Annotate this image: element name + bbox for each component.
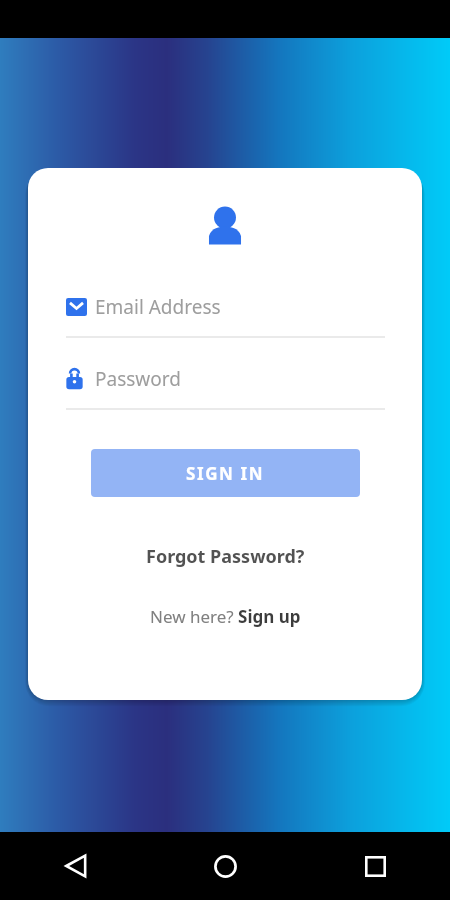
button[interactable]: New here? Sign up — [140, 601, 311, 632]
button[interactable]: Back — [0, 832, 150, 900]
staticText: Forgot Password? — [146, 544, 305, 569]
other: Account — [207, 207, 243, 245]
button[interactable]: Email — [28, 278, 422, 336]
button[interactable]: SIGN IN — [91, 449, 360, 497]
button[interactable]: Home — [150, 832, 300, 900]
staticText: New here? Sign up — [150, 605, 301, 628]
button[interactable]: Recent apps — [300, 832, 450, 900]
other: Email — [66, 298, 87, 316]
staticText: SIGN IN — [186, 462, 265, 485]
other: Password — [66, 368, 83, 390]
staticText: Email Address — [95, 294, 221, 320]
button[interactable]: Password — [28, 350, 422, 408]
button[interactable]: Forgot Password? — [136, 540, 315, 573]
staticText: Password — [95, 366, 181, 392]
